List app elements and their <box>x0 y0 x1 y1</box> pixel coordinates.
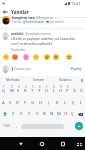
staticText: Yanıtını yaz <box>14 67 31 71</box>
button[interactable]: Reaction 4 <box>33 54 39 60</box>
button[interactable]: 2 <box>8 84 15 96</box>
button[interactable]: Reaction 6 <box>53 54 59 60</box>
staticText: T <box>31 88 34 94</box>
button[interactable]: Reaction 5 <box>44 54 50 60</box>
button[interactable]: B <box>41 108 48 120</box>
button[interactable]: M <box>55 108 62 120</box>
staticText: U <box>45 88 49 94</box>
button[interactable]: Paylaş <box>70 65 83 72</box>
button[interactable]: Shift <box>0 108 9 120</box>
button[interactable]: X <box>17 108 25 120</box>
staticText: L <box>64 100 67 106</box>
button[interactable]: 8 <box>50 84 57 96</box>
button[interactable]: Recents <box>58 139 68 149</box>
staticText: Yanıtlar <box>11 9 29 15</box>
button[interactable]: Ç <box>69 108 76 120</box>
button[interactable]: Hide keyboard <box>74 139 84 149</box>
button[interactable]: K <box>53 96 61 108</box>
button[interactable]: Merhaba <box>0 76 26 84</box>
staticText: K <box>56 100 59 106</box>
button[interactable]: Reaction 1 <box>3 54 9 60</box>
button[interactable]: N <box>48 108 55 120</box>
staticText: @anabolicosman <box>25 32 51 36</box>
staticText: E <box>17 88 20 94</box>
button[interactable]: Reaction 3 <box>23 54 29 60</box>
button[interactable]: Back <box>16 139 26 149</box>
button[interactable]: kangörsü sten <box>2 16 84 24</box>
staticText: Ş <box>72 100 75 106</box>
button[interactable]: D <box>14 96 21 108</box>
button[interactable]: Ş <box>69 96 77 108</box>
staticText: O <box>59 88 63 94</box>
button[interactable]: Space <box>21 124 64 129</box>
staticText: N <box>50 111 54 117</box>
button[interactable]: 1 <box>0 84 8 96</box>
staticText: H <box>39 100 43 106</box>
staticText: X <box>20 111 23 117</box>
button[interactable]: İ <box>77 96 85 108</box>
staticText: W <box>10 88 14 94</box>
button[interactable]: S <box>7 96 14 108</box>
button[interactable]: 7 <box>43 84 50 96</box>
button[interactable]: acebilet <box>2 32 85 46</box>
button[interactable]: 5 <box>29 84 36 96</box>
button[interactable]: Home <box>37 139 47 149</box>
staticText: ?123 <box>3 124 10 128</box>
button[interactable]: G <box>29 96 37 108</box>
staticText: G <box>31 100 35 106</box>
staticText: com? m afisonKonualhecd2 <box>11 42 53 46</box>
staticText: Kullanıcı <box>59 78 72 82</box>
button[interactable]: ?123 <box>0 120 13 132</box>
button[interactable]: L <box>61 96 69 108</box>
button[interactable]: F <box>21 96 29 108</box>
staticText: Z <box>12 111 15 117</box>
button[interactable]: Send <box>72 120 85 132</box>
staticText: 9 <box>60 85 62 89</box>
staticText: C <box>28 111 31 117</box>
button[interactable]: 0 <box>64 84 71 96</box>
button[interactable]: , <box>13 120 20 132</box>
staticText: Q <box>2 88 6 94</box>
staticText: 1 <box>3 85 5 89</box>
button[interactable]: 3 <box>15 84 22 96</box>
staticText: for more! <box>50 20 64 24</box>
staticText: M <box>57 111 61 117</box>
staticText: . <box>68 123 70 129</box>
button[interactable]: Z <box>9 108 17 120</box>
staticText: etkinlik ve paylaşan adamlar yok kazandı… <box>11 37 76 41</box>
button[interactable]: C <box>25 108 33 120</box>
button[interactable]: Backspace <box>76 108 85 120</box>
staticText: @kangorsu <box>36 16 54 20</box>
staticText: R <box>24 88 27 94</box>
button[interactable]: A <box>0 96 7 108</box>
staticText: Merhaba <box>6 78 20 82</box>
staticText: Ü <box>80 88 84 94</box>
button[interactable]: Reaction 7 <box>66 54 72 60</box>
staticText: 13:47 <box>71 1 81 6</box>
button[interactable]: 6 <box>36 84 43 96</box>
staticText: Paylaşılan... <box>11 48 28 52</box>
button[interactable]: Voice input <box>78 76 85 84</box>
button[interactable]: Back <box>0 7 11 17</box>
staticText: 4 <box>25 85 27 89</box>
staticText: acebilet <box>11 32 24 36</box>
staticText: A <box>2 100 5 106</box>
button[interactable]: 4 <box>22 84 29 96</box>
button[interactable]: Ğ <box>71 84 78 96</box>
staticText: , <box>16 123 18 129</box>
button[interactable]: V <box>33 108 41 120</box>
button[interactable]: . <box>65 120 72 132</box>
staticText: 2 <box>11 85 13 89</box>
staticText: I <box>53 88 55 94</box>
button[interactable]: Ö <box>62 108 69 120</box>
button[interactable]: Ü <box>78 84 85 96</box>
staticText: Y <box>38 88 41 94</box>
staticText: 3 <box>18 85 20 89</box>
button[interactable]: 9 <box>57 84 64 96</box>
button[interactable]: J <box>45 96 53 108</box>
button[interactable]: Kullanıcı <box>52 76 78 84</box>
button[interactable]: H <box>37 96 45 108</box>
button[interactable]: Tamam <box>26 76 52 84</box>
staticText: Ğ <box>73 88 77 94</box>
button[interactable]: Reaction 2 <box>12 54 18 60</box>
